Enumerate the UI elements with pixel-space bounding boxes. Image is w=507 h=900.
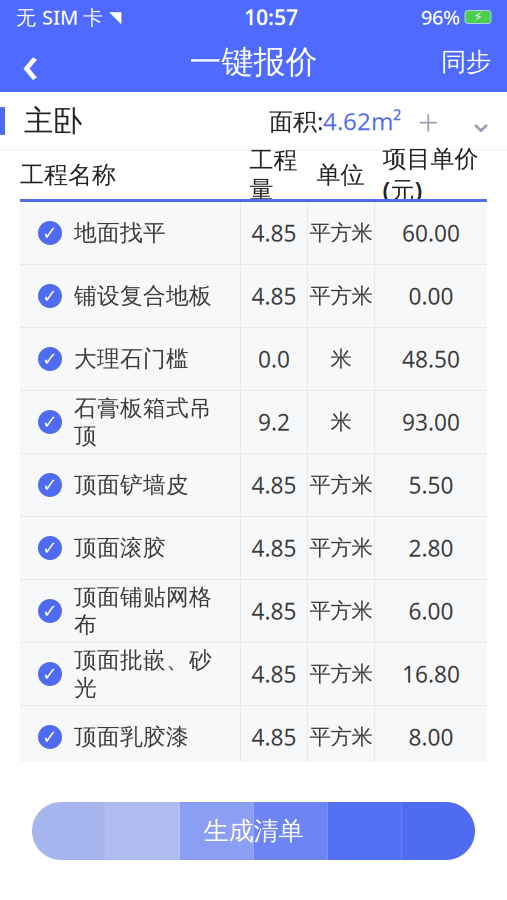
staticText: 2.80	[408, 533, 453, 563]
staticText: 大理石门槛	[74, 345, 189, 373]
staticText: 一键报价	[189, 42, 317, 82]
staticText: 顶面铺贴网格布	[74, 583, 212, 639]
staticText: ✓	[42, 663, 58, 685]
staticText: ⌄	[467, 103, 494, 139]
staticText: ⚡︎	[473, 9, 482, 24]
button[interactable]: ✓	[20, 265, 487, 327]
staticText: ✓	[42, 222, 58, 244]
button[interactable]: 生成清单	[32, 802, 475, 860]
staticText: 10:57	[244, 3, 298, 31]
staticText: ✓	[42, 600, 58, 622]
staticText: 顶面批嵌、砂光	[74, 646, 212, 702]
staticText: ◥	[109, 8, 121, 26]
staticText: 4.85	[251, 470, 296, 500]
staticText: 48.50	[402, 344, 460, 374]
staticText: 顶面乳胶漆	[74, 723, 189, 751]
staticText: 同步	[441, 46, 491, 77]
button[interactable]: ✓	[20, 517, 487, 579]
staticText: 96%	[421, 4, 460, 30]
button[interactable]: ✓	[20, 706, 487, 768]
staticText: 地面找平	[74, 219, 166, 247]
staticText: 4.85	[251, 533, 296, 563]
staticText: 平方米	[309, 724, 372, 750]
staticText: 平方米	[309, 220, 372, 246]
staticText: 米	[330, 346, 351, 372]
staticText: 铺设复合地板	[74, 282, 212, 310]
staticText: 0.00	[408, 281, 453, 311]
button[interactable]: ✓	[20, 391, 487, 453]
staticText: 顶面滚胶	[74, 534, 166, 562]
staticText: 单位	[316, 160, 364, 190]
staticText: +	[417, 96, 438, 146]
button[interactable]: ✓	[20, 454, 487, 516]
staticText: 4.85	[251, 281, 296, 311]
button[interactable]: ✓	[20, 202, 487, 264]
staticText: ‹	[21, 27, 38, 97]
staticText: 4.85	[251, 218, 296, 248]
staticText: 60.00	[402, 218, 460, 248]
staticText: 平方米	[309, 598, 372, 624]
staticText: 工程量	[249, 145, 297, 204]
staticText: 5.50	[408, 470, 453, 500]
staticText: 9.2	[258, 407, 290, 437]
staticText: 0.0	[258, 344, 290, 374]
staticText: 无 SIM 卡	[16, 4, 103, 30]
staticText: 4.85	[251, 659, 296, 689]
staticText: 16.80	[402, 659, 460, 689]
button[interactable]: 展开	[455, 97, 507, 145]
staticText: 工程名称	[20, 160, 116, 190]
staticText: 主卧	[24, 103, 82, 139]
staticText: 4.85	[251, 722, 296, 752]
staticText: ✓	[42, 474, 58, 496]
button[interactable]: 添加项目	[401, 97, 455, 145]
staticText: 顶面铲墙皮	[74, 471, 189, 499]
staticText: 4.62m²	[323, 105, 401, 137]
button[interactable]: ✓	[20, 643, 487, 705]
button[interactable]: 同步	[425, 33, 507, 91]
staticText: ✓	[42, 348, 58, 370]
staticText: 生成清单	[203, 815, 303, 846]
staticText: 8.00	[408, 722, 453, 752]
staticText: 平方米	[309, 472, 372, 498]
staticText: 面积:	[269, 105, 323, 137]
staticText: ✓	[42, 411, 58, 433]
button[interactable]: 返回	[0, 33, 60, 91]
staticText: 米	[330, 409, 351, 435]
staticText: ✓	[42, 285, 58, 307]
staticText: 4.85	[251, 596, 296, 626]
staticText: 平方米	[309, 283, 372, 309]
staticText: ✓	[42, 537, 58, 559]
staticText: 平方米	[309, 535, 372, 561]
staticText: 6.00	[408, 596, 453, 626]
staticText: 项目单价(元)	[382, 144, 478, 206]
button[interactable]: ✓	[20, 328, 487, 390]
staticText: 93.00	[402, 407, 460, 437]
staticText: ✓	[42, 726, 58, 748]
staticText: 石膏板箱式吊顶	[74, 394, 212, 450]
button[interactable]: ✓	[20, 580, 487, 642]
staticText: 平方米	[309, 661, 372, 687]
